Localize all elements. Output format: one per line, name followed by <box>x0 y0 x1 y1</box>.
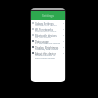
button[interactable]: Display, Brightness <box>31 45 65 51</box>
staticText: Display, Brightness <box>35 46 59 50</box>
staticText: Adaptive, dark theme <box>35 48 59 51</box>
staticText: 3.1 GB used this month <box>35 42 61 45</box>
staticText: Settings <box>42 14 55 18</box>
button[interactable]: About this device <box>31 51 65 59</box>
staticText: About this device <box>35 52 56 56</box>
staticText: Bluetooth devices <box>35 34 57 38</box>
staticText: Galaxy Settings <box>35 22 54 26</box>
staticText: Wi-Fi networks <box>35 28 53 32</box>
button[interactable]: Wi-Fi networks <box>31 27 65 33</box>
staticText: Data usage <box>35 40 49 44</box>
staticText: On, two paired <box>35 36 51 39</box>
staticText: Android version 12 <box>35 54 56 57</box>
button[interactable]: Data usage <box>31 39 65 45</box>
staticText: Manage your device <box>35 24 57 27</box>
staticText: Connected to home <box>35 30 57 33</box>
staticText: your phone model <box>35 57 55 60</box>
button[interactable]: Galaxy Settings <box>31 21 65 27</box>
button[interactable]: Settings <box>31 11 65 20</box>
button[interactable]: Bluetooth devices <box>31 33 65 39</box>
